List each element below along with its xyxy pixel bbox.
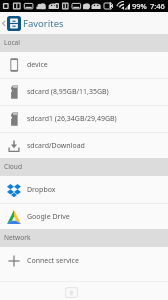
- staticText: device: [27, 60, 48, 70]
- button[interactable]: sdcard (8,95GB/11,35GB): [0, 78, 168, 105]
- staticText: Cloud: [4, 162, 22, 171]
- button[interactable]: Back: [0, 12, 7, 34]
- button[interactable]: Dropbox: [0, 176, 168, 203]
- staticText: Network: [4, 233, 31, 242]
- staticText: Favorites: [23, 17, 64, 30]
- button[interactable]: device: [0, 51, 168, 78]
- button[interactable]: Google Drive: [0, 203, 168, 230]
- button[interactable]: Home: [65, 287, 78, 298]
- staticText: Connect service: [27, 256, 79, 266]
- button[interactable]: Connect service: [0, 247, 168, 274]
- staticText: Google Drive: [27, 212, 70, 222]
- button[interactable]: sdcard/Download: [0, 132, 168, 159]
- staticText: sdcard/Download: [27, 141, 85, 151]
- staticText: Local: [4, 38, 21, 47]
- staticText: sdcard1 (26,34GB/29,49GB): [27, 114, 117, 124]
- staticText: Dropbox: [27, 185, 56, 195]
- staticText: sdcard (8,95GB/11,35GB): [27, 87, 109, 97]
- staticText: 7:46: [150, 1, 165, 11]
- staticText: 99%: [132, 1, 147, 11]
- button[interactable]: sdcard1 (26,34GB/29,49GB): [0, 105, 168, 132]
